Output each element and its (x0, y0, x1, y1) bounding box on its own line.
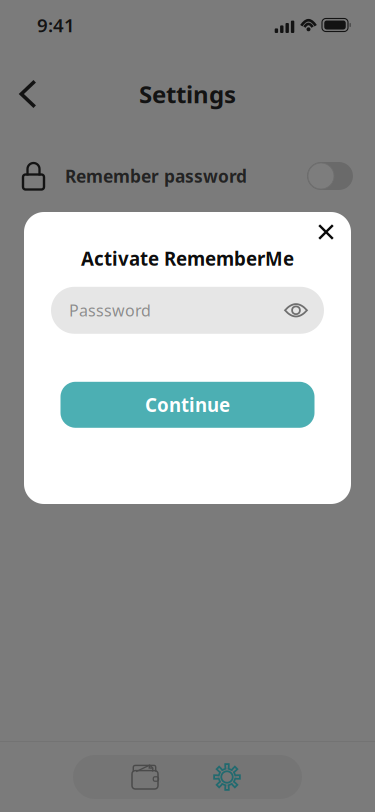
button[interactable]: Remember password (0, 138, 375, 214)
button[interactable]: Wallet (123, 755, 167, 799)
button[interactable]: Back (6, 72, 50, 116)
staticText: Passsword (69, 300, 151, 321)
staticText: Remember password (65, 164, 247, 187)
button[interactable]: Close (307, 212, 345, 246)
staticText: Activate RememberMe (81, 246, 294, 271)
button[interactable]: Show password (279, 293, 313, 327)
button[interactable]: Settings (205, 755, 249, 799)
staticText: Continue (145, 392, 230, 417)
staticText: Settings (139, 78, 236, 110)
button[interactable]: Continue (60, 382, 314, 428)
staticText: 9:41 (37, 13, 75, 37)
